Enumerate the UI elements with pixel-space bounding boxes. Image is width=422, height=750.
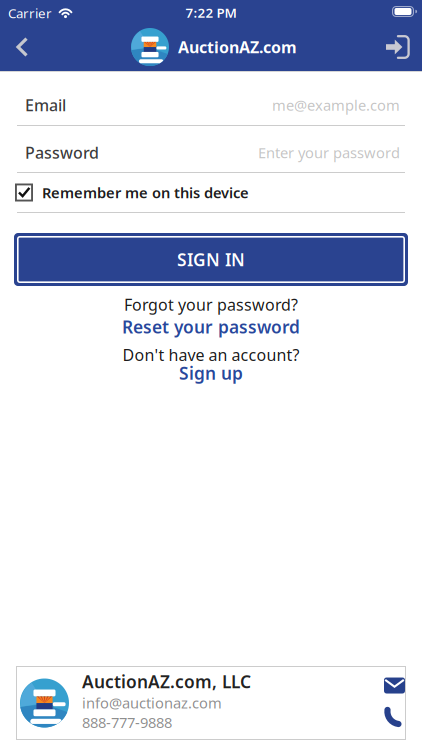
staticText: Enter your password — [258, 143, 400, 162]
staticText: Reset your password — [122, 315, 300, 338]
staticText: 888-777-9888 — [82, 712, 172, 732]
button[interactable]: SIGN IN — [14, 233, 408, 286]
button[interactable]: Email — [0, 72, 422, 125]
staticText: Email — [25, 94, 66, 116]
button[interactable]: Back — [0, 27, 29, 67]
button[interactable]: Sign In — [386, 25, 422, 69]
button[interactable]: Remember me on this device — [0, 173, 422, 212]
staticText: 7:22 PM — [185, 4, 236, 21]
staticText: Carrier — [8, 4, 52, 22]
staticText: Remember me on this device — [42, 183, 249, 202]
staticText: AuctionAZ.com, LLC — [82, 670, 251, 693]
staticText: Don't have an account? — [122, 344, 299, 365]
button[interactable]: Call AuctionAZ — [384, 706, 405, 728]
button[interactable]: Password — [0, 126, 422, 172]
staticText: AuctionAZ.com — [178, 36, 297, 58]
button[interactable]: Reset your password — [122, 315, 300, 338]
staticText: info@auctionaz.com — [82, 693, 222, 712]
staticText: Sign up — [179, 361, 243, 384]
staticText: me@example.com — [272, 95, 400, 115]
button[interactable]: Email AuctionAZ — [384, 677, 405, 693]
staticText: Forgot your password? — [124, 294, 298, 315]
staticText: SIGN IN — [177, 248, 245, 271]
staticText: Password — [25, 142, 99, 163]
button[interactable]: Sign up — [179, 361, 243, 384]
